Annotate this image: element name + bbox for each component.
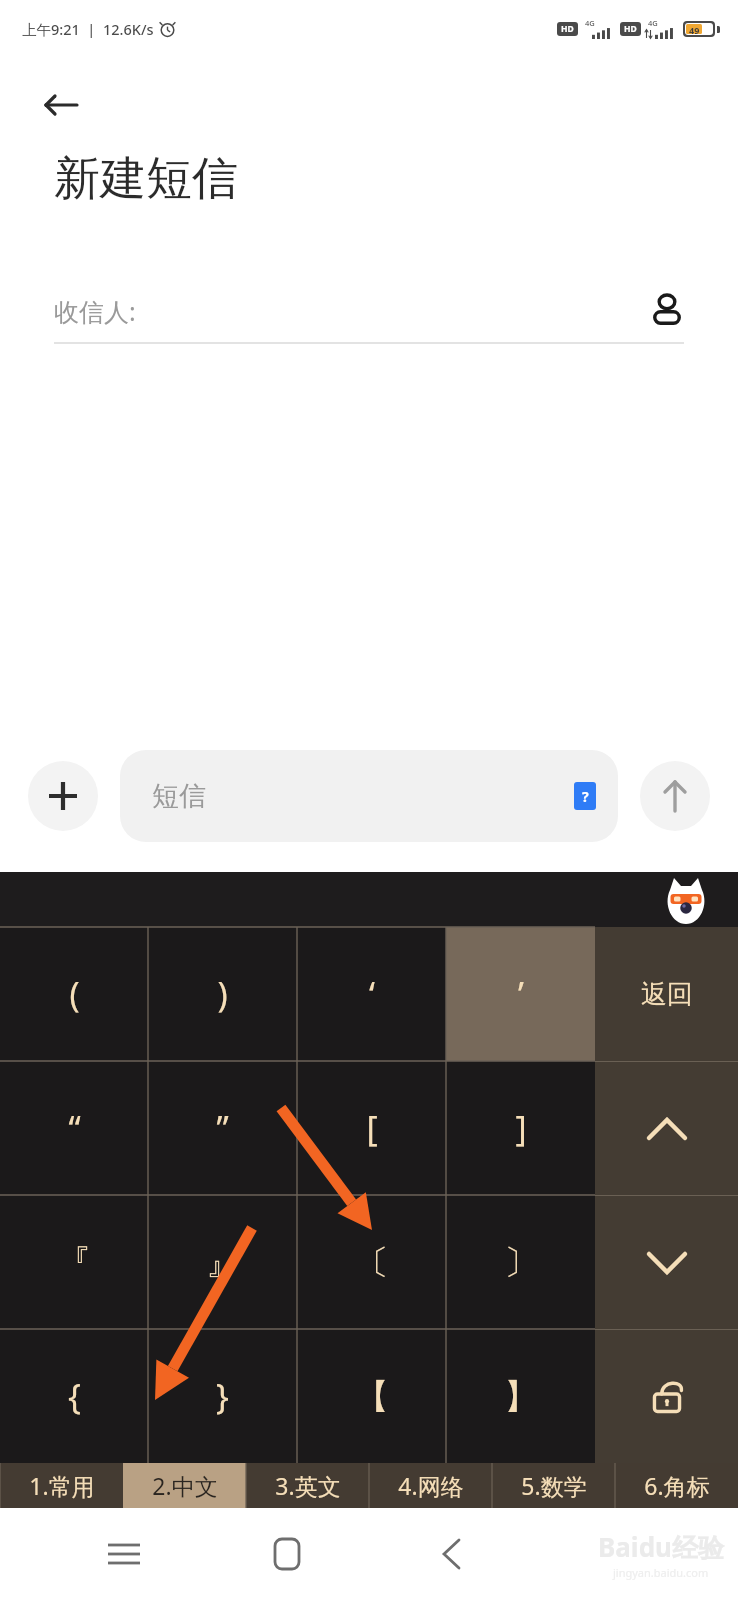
staticText: 〔 — [355, 1241, 389, 1284]
button[interactable]: ) — [148, 927, 297, 1061]
staticText: jingyan.baidu.com — [613, 1565, 709, 1580]
staticText: 『 — [57, 1241, 91, 1284]
button[interactable]: SIM info — [574, 782, 596, 810]
button[interactable]: 2.中文 — [123, 1463, 246, 1508]
staticText: ’ — [518, 971, 524, 1017]
button[interactable]: { — [0, 1329, 148, 1463]
staticText: ? — [582, 787, 589, 806]
button[interactable]: Back — [411, 1514, 491, 1594]
button[interactable]: 6.角标 — [615, 1463, 738, 1508]
button[interactable]: ’ — [446, 927, 595, 1061]
button[interactable]: “ — [0, 1061, 148, 1195]
button[interactable]: 【 — [297, 1329, 446, 1463]
button[interactable]: Lock — [595, 1330, 738, 1463]
staticText: 】 — [504, 1375, 538, 1418]
button[interactable]: 1.常用 — [0, 1463, 123, 1508]
button[interactable]: Page down — [595, 1196, 738, 1329]
staticText: [ — [366, 1105, 378, 1151]
button[interactable]: ] — [446, 1061, 595, 1195]
button[interactable]: [ — [297, 1061, 446, 1195]
staticText: Baidu经验 — [598, 1529, 724, 1565]
button[interactable]: Home — [247, 1514, 327, 1594]
button[interactable]: Back — [38, 82, 84, 128]
staticText: 〕 — [504, 1241, 538, 1284]
button[interactable]: 4.网络 — [369, 1463, 492, 1508]
staticText: ‘ — [369, 971, 375, 1017]
staticText: ” — [216, 1105, 229, 1151]
staticText: ] — [515, 1105, 527, 1151]
staticText: 4G — [585, 18, 595, 28]
staticText: 2.中文 — [152, 1470, 218, 1501]
staticText: HD — [624, 23, 637, 35]
staticText: 4G — [648, 18, 658, 28]
button[interactable]: ‘ — [297, 927, 446, 1061]
button[interactable]: 3.英文 — [246, 1463, 369, 1508]
button[interactable]: Page up — [595, 1062, 738, 1195]
staticText: 短信 — [152, 779, 574, 813]
button[interactable]: 短信 — [120, 750, 618, 842]
staticText: 49 — [689, 24, 700, 34]
staticText: 1.常用 — [29, 1470, 95, 1501]
staticText: } — [216, 1373, 229, 1419]
staticText: 6.角标 — [644, 1470, 710, 1501]
staticText: 4.网络 — [398, 1470, 464, 1501]
staticText: 上午9:21 | 12.6K/s — [22, 19, 154, 39]
button[interactable]: ( — [0, 927, 148, 1061]
staticText: 返回 — [641, 978, 693, 1011]
button[interactable]: } — [148, 1329, 297, 1463]
button[interactable]: 〔 — [297, 1195, 446, 1329]
staticText: ( — [69, 971, 80, 1017]
staticText: 【 — [355, 1375, 389, 1418]
button[interactable]: 返回 — [595, 927, 738, 1061]
staticText: “ — [68, 1105, 81, 1151]
button[interactable]: 『 — [0, 1195, 148, 1329]
button[interactable]: 5.数学 — [492, 1463, 615, 1508]
button[interactable]: Add attachment — [28, 761, 98, 831]
button[interactable]: Send — [640, 761, 710, 831]
button[interactable]: Recent apps — [84, 1514, 164, 1594]
staticText: ) — [217, 971, 228, 1017]
button[interactable]: Pick contact — [640, 284, 694, 338]
button[interactable]: 〕 — [446, 1195, 595, 1329]
staticText: 收信人: — [54, 294, 640, 328]
staticText: 3.英文 — [275, 1470, 341, 1501]
button[interactable]: 】 — [446, 1329, 595, 1463]
button[interactable]: Input method logo — [660, 874, 712, 926]
staticText: { — [68, 1373, 81, 1419]
staticText: 新建短信 — [54, 150, 238, 208]
staticText: HD — [561, 23, 574, 35]
button[interactable]: ” — [148, 1061, 297, 1195]
button[interactable]: 』 — [148, 1195, 297, 1329]
staticText: 』 — [206, 1241, 240, 1284]
staticText: 5.数学 — [521, 1470, 587, 1501]
